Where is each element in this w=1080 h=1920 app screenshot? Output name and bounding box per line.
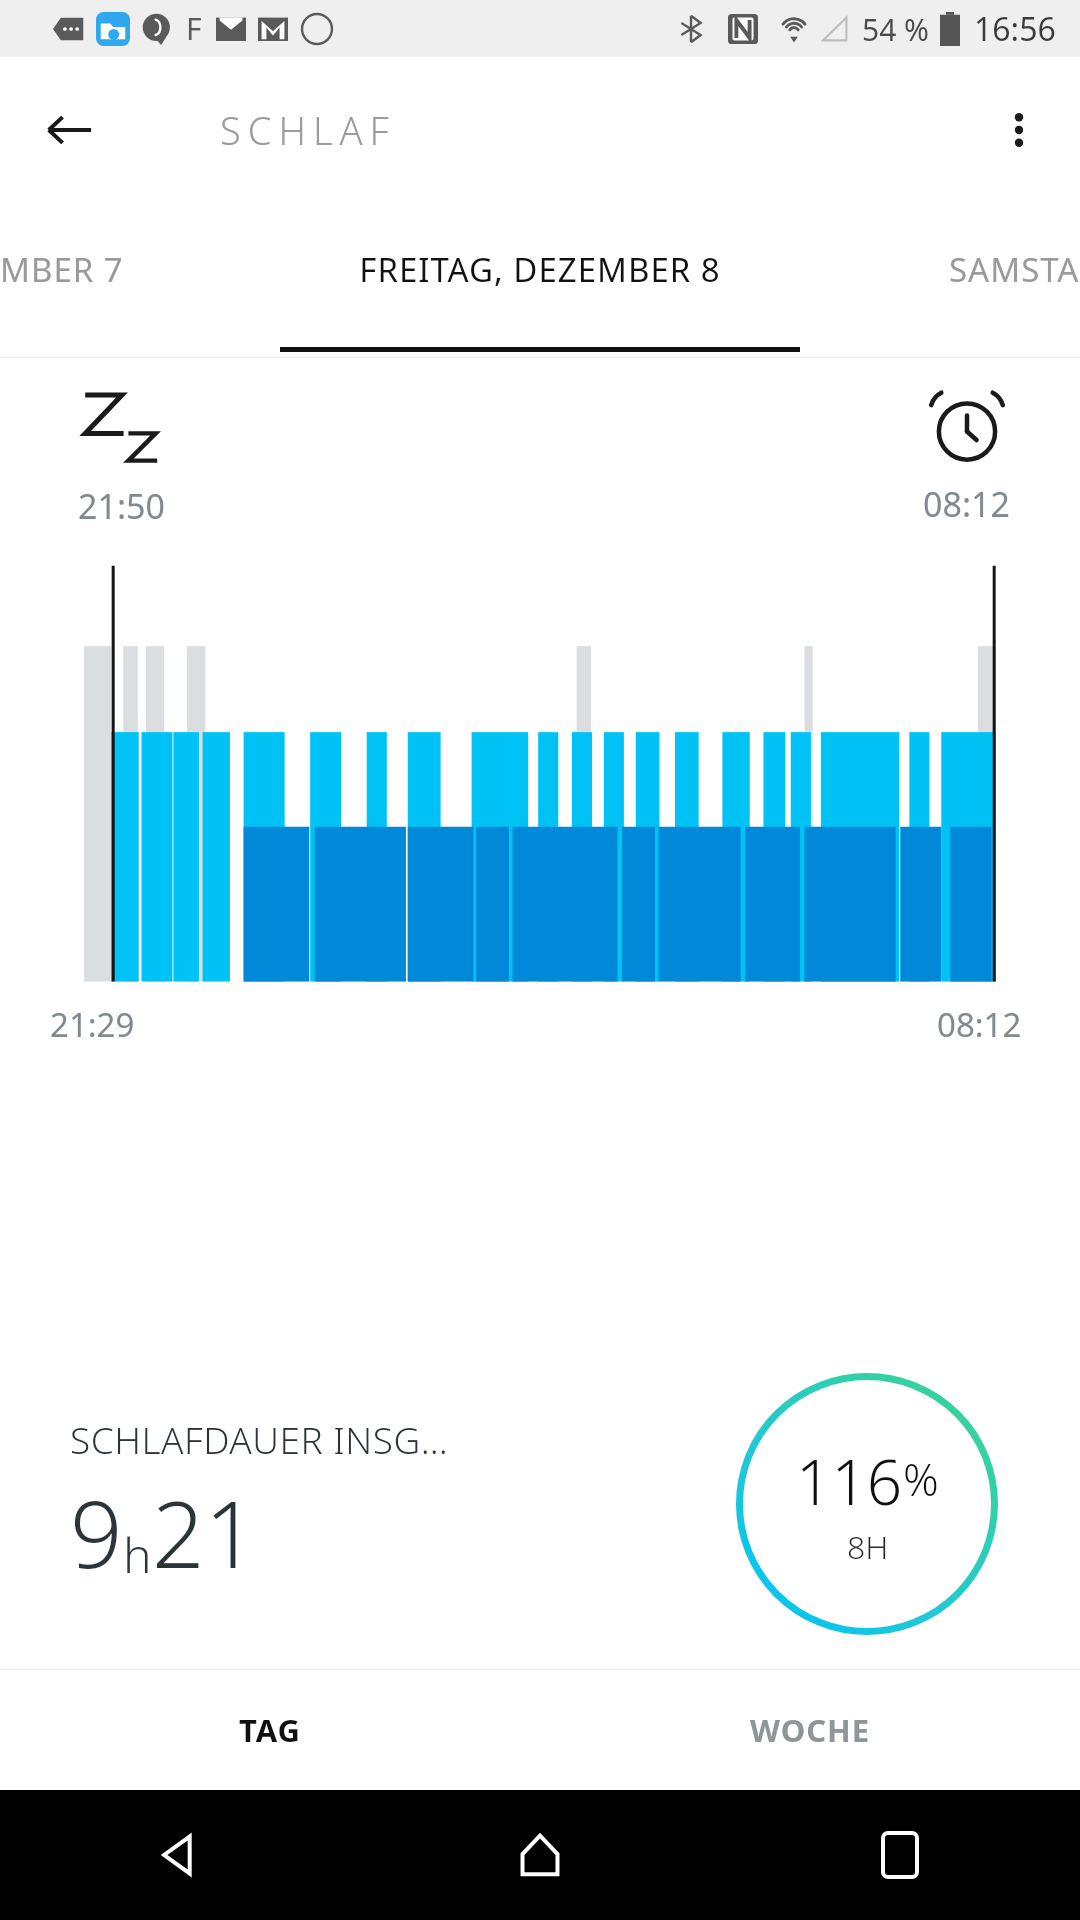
staticText: 21	[152, 1470, 258, 1595]
staticText: 8H	[847, 1525, 889, 1569]
button[interactable]: WOCHE	[540, 1670, 1080, 1790]
button[interactable]: Home	[360, 1790, 720, 1920]
button[interactable]: SAMSTA	[949, 247, 1080, 292]
staticText: %	[903, 1449, 939, 1509]
button[interactable]: Recent apps	[720, 1790, 1080, 1920]
staticText: h	[123, 1522, 152, 1587]
staticText: 21:29	[50, 1002, 135, 1047]
staticText: 116	[796, 1439, 903, 1523]
staticText: 9	[70, 1470, 123, 1595]
button[interactable]: FREITAG, DEZEMBER 8	[359, 247, 721, 292]
staticText: SCHLAF	[220, 104, 396, 156]
staticText: 54 %	[862, 9, 930, 50]
button[interactable]: Back	[0, 1790, 360, 1920]
staticText: 16:56	[974, 7, 1056, 51]
staticText: WOCHE	[750, 1709, 871, 1751]
button[interactable]: More options	[984, 95, 1054, 165]
button[interactable]: TAG	[0, 1670, 540, 1790]
staticText: SCHLAFDAUER INSG…	[70, 1414, 449, 1464]
button[interactable]: 116	[736, 1373, 998, 1635]
staticText: 21:50	[78, 483, 165, 529]
staticText: TAG	[239, 1709, 301, 1751]
staticText: 08:12	[937, 1002, 1022, 1047]
staticText: F	[186, 8, 202, 49]
button[interactable]: Back	[34, 95, 104, 165]
button[interactable]: MBER 7	[0, 247, 124, 292]
staticText: 08:12	[923, 481, 1010, 527]
